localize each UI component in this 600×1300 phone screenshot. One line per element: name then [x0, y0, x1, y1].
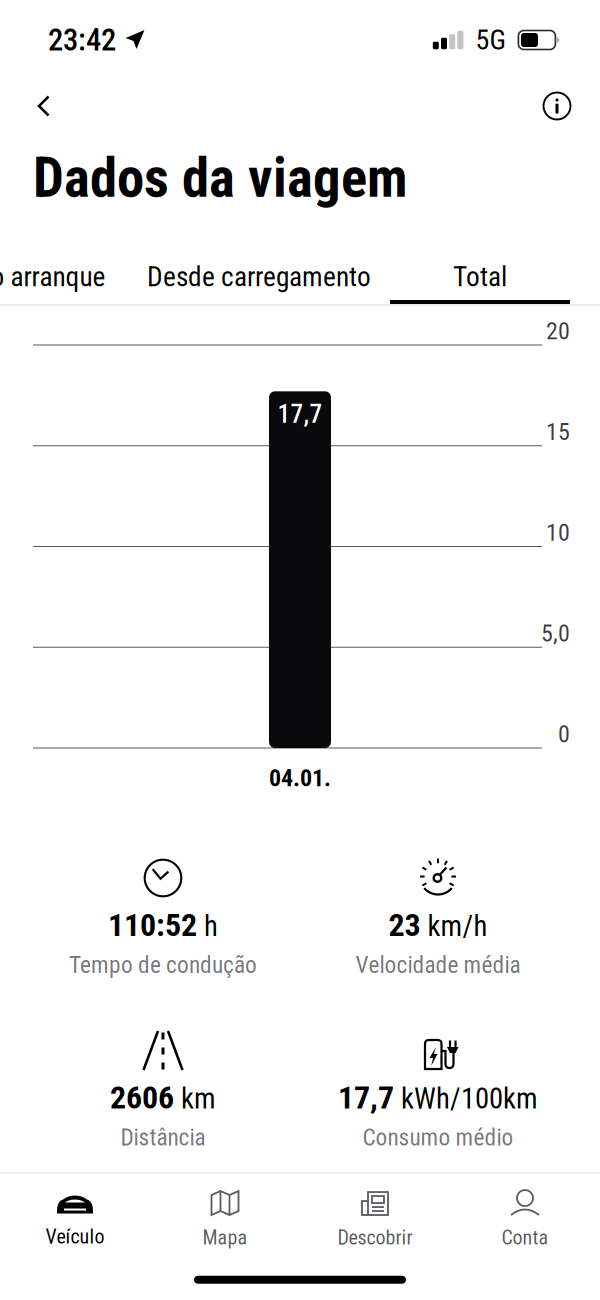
staticText: 04.01.	[269, 764, 331, 792]
staticText: Distância	[120, 1124, 205, 1151]
staticText: km	[181, 1082, 216, 1115]
staticText: 110:52	[108, 906, 197, 944]
staticText: 23:42	[48, 22, 116, 58]
staticText: Descobrir	[337, 1226, 412, 1249]
staticText: 20	[546, 317, 570, 345]
staticText: Veículo	[45, 1225, 104, 1248]
button[interactable]: Information	[530, 79, 584, 133]
staticText: Desde carregamento	[147, 261, 371, 293]
staticText: Consumo médio	[362, 1124, 513, 1151]
staticText: 15	[546, 418, 570, 446]
staticText: 5,0	[541, 619, 570, 647]
staticText: 5G	[475, 24, 506, 56]
staticText: 17,7	[338, 1079, 394, 1116]
staticText: Tempo de condução	[69, 951, 257, 979]
staticText: 17,7	[277, 399, 322, 429]
staticText: Mapa	[202, 1226, 247, 1249]
button[interactable]: Desde carregamento	[134, 248, 384, 306]
staticText: 23	[388, 906, 420, 944]
staticText: Dados da viagem	[33, 146, 408, 210]
staticText: kWh/100km	[401, 1082, 538, 1115]
staticText: Velocidade média	[355, 951, 520, 979]
staticText: km/h	[427, 909, 487, 943]
staticText: Total	[453, 261, 507, 293]
button[interactable]: o arranque	[0, 248, 138, 306]
button[interactable]: Back	[22, 79, 66, 133]
button[interactable]: Total	[390, 248, 570, 306]
button[interactable]: Conta	[450, 1176, 600, 1257]
button[interactable]: Veículo	[0, 1177, 150, 1256]
staticText: 0	[558, 720, 570, 748]
button[interactable]: Descobrir	[300, 1176, 450, 1257]
staticText: o arranque	[0, 261, 105, 293]
button[interactable]: Mapa	[150, 1176, 300, 1257]
staticText: 2606	[110, 1079, 174, 1116]
staticText: Conta	[501, 1226, 548, 1249]
staticText: 10	[546, 518, 570, 546]
staticText: h	[204, 909, 218, 943]
